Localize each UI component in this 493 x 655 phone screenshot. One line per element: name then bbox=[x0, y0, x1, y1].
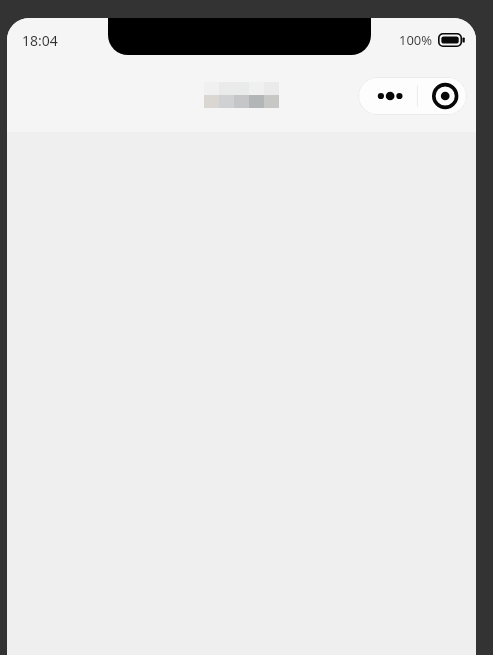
staticText: 100% bbox=[399, 31, 433, 49]
button[interactable]: More options and close mini program bbox=[358, 77, 467, 115]
staticText: 18:04 bbox=[22, 31, 58, 50]
